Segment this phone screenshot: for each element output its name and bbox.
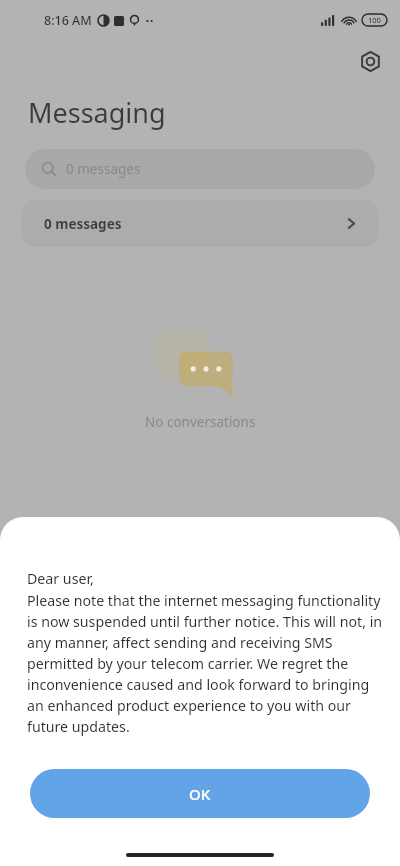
button[interactable]: Settings <box>352 43 388 79</box>
staticText: Dear user, Please note that the internet… <box>27 569 384 736</box>
staticText: 0 messages <box>44 215 122 233</box>
button[interactable]: 0 messages <box>25 149 375 189</box>
button[interactable]: 0 messages <box>22 200 378 247</box>
staticText: 0 messages <box>66 160 141 178</box>
staticText: No conversations <box>145 413 256 431</box>
staticText: OK <box>189 784 211 804</box>
staticText: 100 <box>368 15 381 25</box>
button[interactable]: OK <box>30 769 370 818</box>
staticText: 8:16 AM <box>44 12 92 29</box>
staticText: Messaging <box>28 94 166 131</box>
